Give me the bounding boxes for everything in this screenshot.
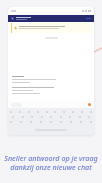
button[interactable]: Menu: [8, 15, 94, 22]
staticText: Sneller antwoord op je vraag dankzij onz…: [0, 153, 102, 172]
button[interactable]: [11, 23, 92, 33]
button[interactable]: Assistant: [88, 103, 91, 106]
